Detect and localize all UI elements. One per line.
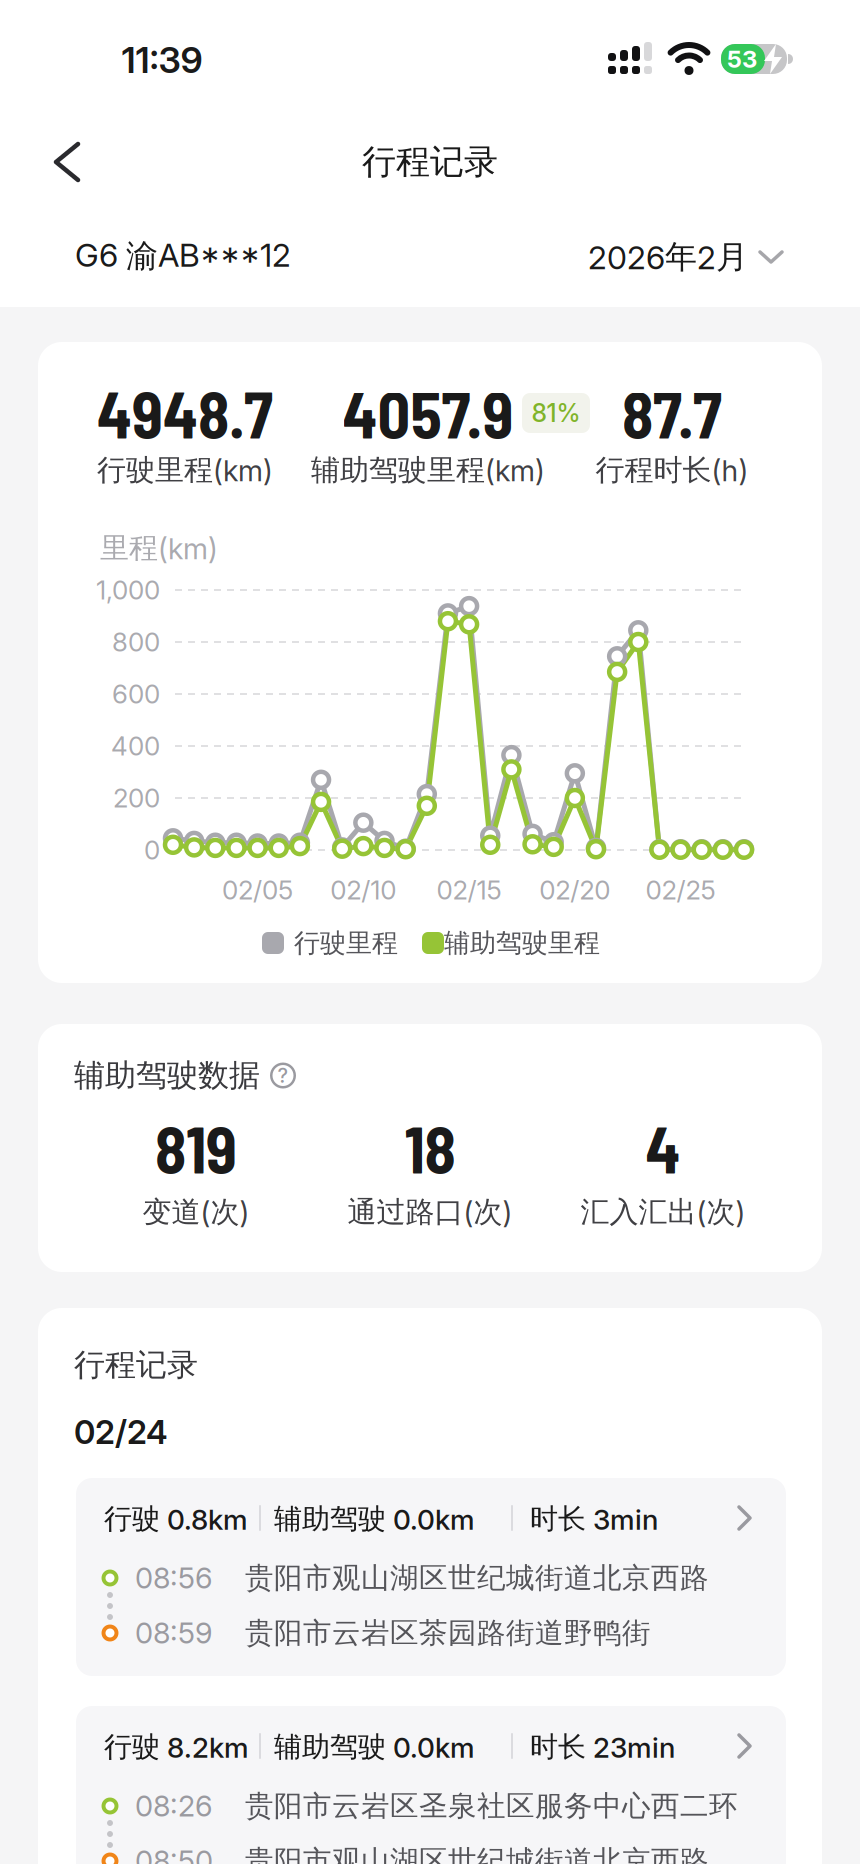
staticText: 贵阳市云岩区圣泉社区服务中心西二环 (245, 1788, 738, 1824)
staticText: 行程时长(h) (595, 452, 748, 488)
staticText: 600 (112, 678, 160, 710)
staticText: 行驶 0.8km (104, 1501, 248, 1537)
staticText: 02/20 (539, 874, 610, 906)
staticText: 0 (144, 834, 160, 866)
staticText: 18 (404, 1110, 455, 1186)
staticText: 变道(次) (142, 1194, 249, 1230)
staticText: G6 渝AB***12 (75, 236, 291, 276)
staticText: 4948.7 (97, 375, 273, 451)
staticText: 4 (645, 1110, 680, 1186)
staticText: 200 (113, 782, 160, 814)
staticText: 53 (727, 44, 757, 73)
staticText: 11:39 (121, 38, 202, 82)
staticText: 819 (155, 1110, 237, 1186)
staticText: 辅助驾驶 0.0km (274, 1729, 475, 1765)
staticText: 时长 3min (530, 1501, 658, 1537)
staticText: 08:56 (135, 1560, 213, 1596)
button[interactable]: 行驶 8.2km (76, 1706, 786, 1864)
staticText: 行程记录 (74, 1345, 198, 1385)
staticText: 08:50 (135, 1843, 213, 1864)
staticText: 08:26 (135, 1788, 213, 1824)
staticText: 行驶里程 (294, 927, 398, 959)
staticText: 800 (112, 626, 160, 658)
staticText: 贵阳市观山湖区世纪城街道北京西路 (245, 1560, 709, 1596)
staticText: 4057.9 (342, 375, 513, 451)
staticText: 02/24 (74, 1412, 168, 1452)
staticText: 02/25 (646, 874, 716, 906)
button[interactable]: ? (270, 1062, 296, 1088)
staticText: 81% (531, 398, 580, 428)
staticText: 辅助驾驶里程 (444, 927, 600, 959)
staticText: 行驶 8.2km (104, 1729, 249, 1765)
staticText: ? (277, 1063, 288, 1088)
staticText: 汇入汇出(次) (580, 1194, 745, 1230)
staticText: 辅助驾驶 0.0km (274, 1501, 475, 1537)
button[interactable]: 2026年2月 (588, 237, 784, 277)
staticText: 02/05 (222, 874, 293, 906)
staticText: 时长 23min (530, 1729, 675, 1765)
staticText: 02/15 (437, 874, 502, 906)
staticText: 1,000 (96, 574, 160, 606)
staticText: 87.7 (622, 375, 722, 451)
button[interactable]: 行驶 0.8km (76, 1478, 786, 1676)
staticText: 2026年2月 (588, 237, 748, 277)
staticText: 行程记录 (362, 141, 498, 183)
staticText: 里程(km) (100, 530, 218, 566)
button[interactable] (38, 132, 98, 192)
staticText: 贵阳市云岩区茶园路街道野鸭街 (245, 1615, 651, 1651)
staticText: 02/10 (330, 874, 396, 906)
staticText: 400 (111, 730, 160, 762)
staticText: 贵阳市观山湖区世纪城街道北京西路 (245, 1843, 709, 1864)
staticText: 行驶里程(km) (97, 452, 273, 488)
staticText: 辅助驾驶里程(km) (311, 452, 545, 488)
staticText: 08:59 (135, 1615, 213, 1651)
staticText: 辅助驾驶数据 (74, 1056, 260, 1095)
staticText: 通过路口(次) (347, 1194, 512, 1230)
